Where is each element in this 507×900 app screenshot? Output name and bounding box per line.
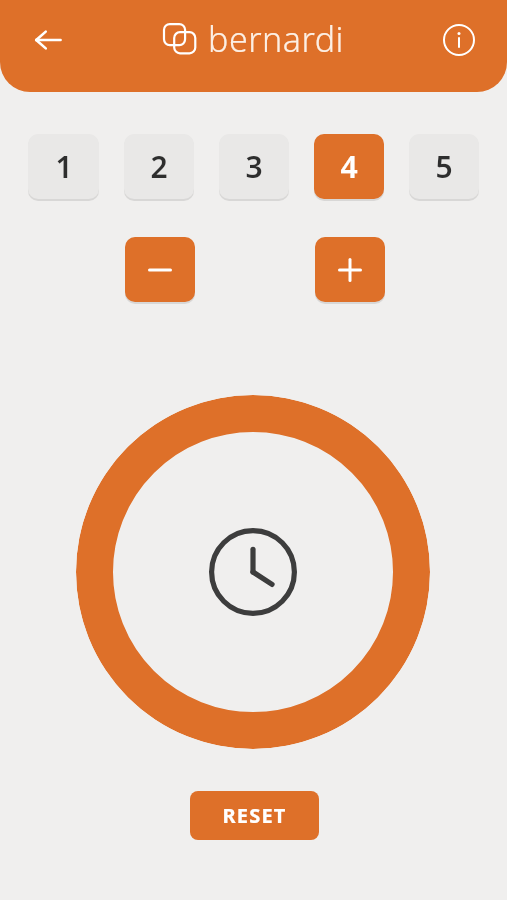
button[interactable]: Back xyxy=(24,16,72,64)
staticText: 5 xyxy=(435,146,453,187)
staticText: 1 xyxy=(55,146,73,187)
button[interactable]: Timer xyxy=(76,395,430,749)
button[interactable]: Increase xyxy=(315,237,385,302)
button[interactable]: RESET xyxy=(190,791,319,840)
button[interactable]: 4 xyxy=(314,134,384,199)
button[interactable]: 1 xyxy=(28,134,99,199)
button[interactable]: 2 xyxy=(124,134,194,199)
staticText: 3 xyxy=(245,146,263,187)
staticText: 2 xyxy=(150,146,168,187)
button[interactable]: Info xyxy=(435,16,483,64)
staticText: bernardi xyxy=(208,16,344,62)
staticText: 4 xyxy=(340,146,358,187)
staticText: RESET xyxy=(222,802,287,829)
button[interactable]: 5 xyxy=(409,134,479,199)
button[interactable]: 3 xyxy=(219,134,289,199)
button[interactable]: Decrease xyxy=(125,237,195,302)
